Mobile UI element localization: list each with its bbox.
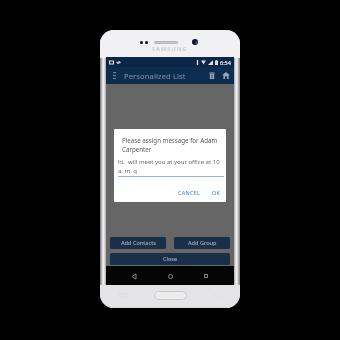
button[interactable]: Home — [162, 268, 178, 284]
button[interactable]: Recents — [198, 268, 214, 284]
button[interactable]: CANCEL — [176, 187, 203, 198]
button[interactable]: Back — [126, 268, 142, 284]
button[interactable]: Close — [110, 253, 230, 265]
staticText: CANCEL — [178, 189, 201, 196]
staticText: hi, will meet you at your office at 10 a… — [118, 158, 224, 175]
staticText: Close — [163, 255, 178, 263]
staticText: Please assign message for Adam Carpenter — [122, 136, 226, 154]
button[interactable]: Home — [154, 291, 187, 300]
staticText: 6:54 — [220, 59, 231, 66]
button[interactable]: Add Group — [174, 237, 230, 249]
button[interactable]: OK — [210, 187, 223, 198]
staticText: Add Contacts — [121, 239, 156, 247]
staticText: Add Group — [188, 239, 217, 247]
button[interactable]: Delete — [205, 69, 218, 82]
staticText: SAMSUNG — [152, 45, 188, 53]
staticText: Personalized List — [124, 71, 186, 81]
button[interactable]: Recents — [119, 293, 126, 298]
staticText: OK — [212, 189, 221, 196]
button[interactable]: Add Contacts — [110, 237, 166, 249]
button[interactable]: Menu — [109, 70, 120, 81]
button[interactable]: Home — [219, 69, 232, 82]
